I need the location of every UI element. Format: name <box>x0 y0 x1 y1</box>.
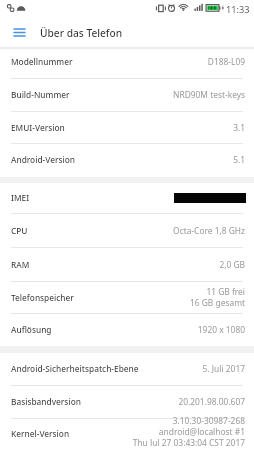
staticText: CPU <box>11 225 28 236</box>
staticText: D188-L09 <box>207 56 245 67</box>
button[interactable]: Build-Nummer <box>0 79 254 112</box>
staticText: Android-Version <box>11 154 75 165</box>
button[interactable]: CPU <box>0 214 254 248</box>
staticText: Über das Telefon <box>40 26 123 40</box>
staticText: Modellnummer <box>11 56 73 67</box>
staticText: RAM <box>11 259 30 270</box>
staticText: 3.1 <box>233 122 245 133</box>
staticText: Kernel-Version <box>11 428 70 439</box>
button[interactable]: Modellnummer <box>0 46 254 79</box>
button[interactable]: Open navigation menu <box>0 18 39 46</box>
staticText: 11 GB frei 16 GB gesamt <box>189 286 245 308</box>
staticText: 5. Juli 2017 <box>202 363 245 374</box>
button[interactable]: Basisbandversion <box>0 386 254 419</box>
button[interactable]: IMEI <box>0 183 254 214</box>
button[interactable]: EMUI-Version <box>0 112 254 144</box>
staticText: Basisbandversion <box>11 396 81 407</box>
staticText: Telefonspeicher <box>11 292 74 303</box>
button[interactable]: Android-Sicherheitspatch-Ebene <box>0 353 254 386</box>
staticText: Octa-Core 1,8 GHz <box>173 225 245 236</box>
staticText: 2,0 GB <box>219 259 245 270</box>
staticText: Auflösung <box>11 324 52 335</box>
staticText: 3.10.30-30987-268 android@localhost #1 T… <box>132 415 245 446</box>
button[interactable]: RAM <box>0 248 254 282</box>
staticText: NRD90M test-keys <box>173 89 245 100</box>
staticText: 11:33 <box>226 3 250 16</box>
staticText: 5.1 <box>233 154 245 165</box>
button[interactable]: Auflösung <box>0 314 254 346</box>
button[interactable]: Android-Version <box>0 144 254 177</box>
staticText: Android-Sicherheitspatch-Ebene <box>11 363 139 374</box>
button[interactable]: Kernel-Version <box>0 419 254 450</box>
staticText: 1920 x 1080 <box>197 324 245 335</box>
staticText: Build-Nummer <box>11 89 70 100</box>
button[interactable]: Telefonspeicher <box>0 282 254 314</box>
staticText: 20.201.98.00.607 <box>178 396 245 407</box>
staticText: IMEI <box>11 192 30 203</box>
staticText: EMUI-Version <box>11 122 65 133</box>
